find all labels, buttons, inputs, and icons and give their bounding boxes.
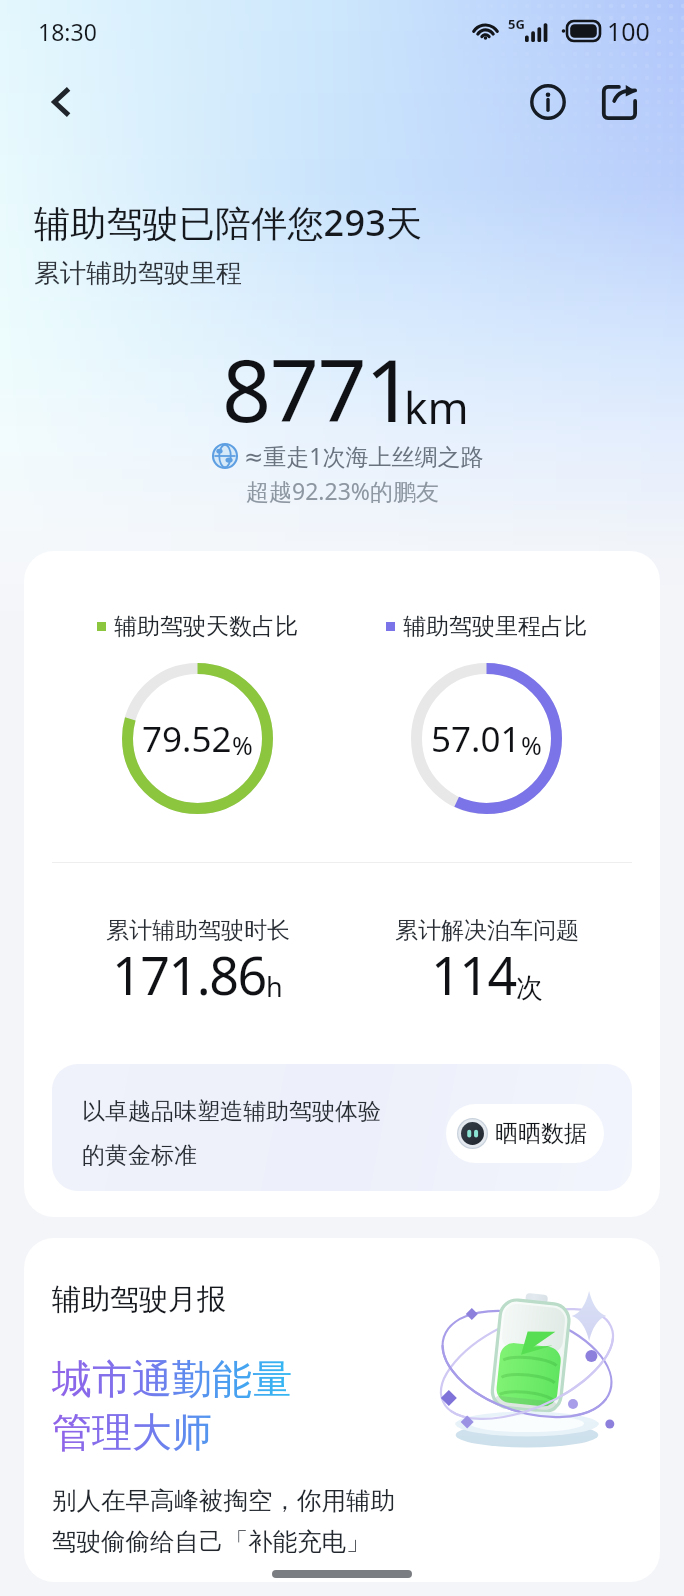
staticText: % (521, 728, 542, 762)
button[interactable]: Info (517, 71, 579, 133)
staticText: 18:30 (38, 16, 97, 47)
staticText: 辅助驾驶里程占比 (403, 612, 587, 641)
staticText: 城市通勤能量 管理大师 (52, 1354, 292, 1457)
staticText: h (266, 968, 283, 1005)
staticText: 79.52 (142, 715, 232, 763)
staticText: 累计解决泊车问题 (395, 916, 579, 945)
staticText: 57.01 (431, 715, 521, 763)
staticText: 8771 (222, 330, 413, 447)
button[interactable]: Share (589, 71, 651, 133)
button[interactable]: 辅助驾驶统计 (24, 551, 660, 1217)
staticText: % (232, 728, 253, 762)
staticText: 次 (516, 971, 543, 1005)
staticText: 累计辅助驾驶时长 (106, 916, 290, 945)
staticText: ≈重走1次海上丝绸之路 (244, 440, 484, 471)
staticText: 5G (508, 15, 525, 33)
staticText: 171.86 (112, 939, 266, 1010)
staticText: 晒晒数据 (495, 1119, 587, 1148)
staticText: 100 (607, 14, 650, 48)
staticText: 辅助驾驶已陪伴您293天 (34, 198, 423, 247)
button[interactable]: 辅助驾驶月报 (24, 1238, 660, 1582)
staticText: 累计辅助驾驶里程 (34, 257, 242, 290)
staticText: 以卓越品味塑造辅助驾驶体验 的黄金标准 (82, 1097, 381, 1170)
button[interactable]: 晒晒数据 (446, 1104, 604, 1163)
staticText: 114 (431, 939, 516, 1010)
button[interactable]: Back (34, 74, 90, 130)
staticText: 辅助驾驶月报 (52, 1281, 226, 1318)
staticText: 超越92.23%的鹏友 (246, 475, 439, 506)
staticText: 辅助驾驶天数占比 (114, 612, 298, 641)
staticText: km (404, 377, 469, 437)
staticText: 别人在早高峰被掏空，你用辅助 驾驶偷偷给自己「补能充电」 (52, 1485, 395, 1558)
